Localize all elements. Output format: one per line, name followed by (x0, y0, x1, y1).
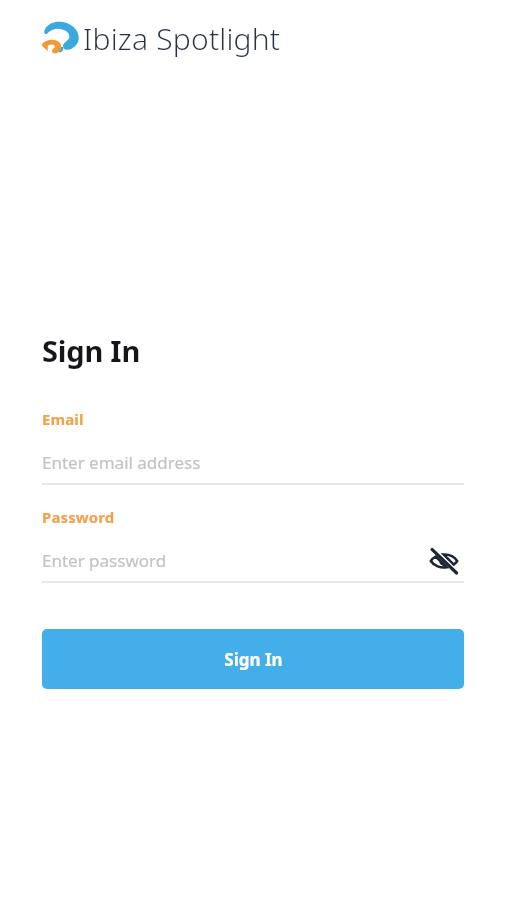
staticText: Sign In (42, 331, 141, 370)
staticText: Password (42, 507, 115, 527)
button[interactable]: Enter email address (42, 448, 464, 477)
button[interactable]: Ibiza Spotlight (38, 16, 310, 62)
button[interactable]: Sign In (42, 629, 464, 689)
button[interactable]: Enter password (42, 546, 464, 575)
staticText: Ibiza Spotlight (83, 18, 281, 59)
staticText: Email (42, 409, 84, 429)
staticText: Enter password (42, 549, 167, 572)
button[interactable]: Show password (424, 546, 464, 575)
staticText: Sign In (224, 648, 283, 671)
staticText: Enter email address (42, 451, 201, 474)
